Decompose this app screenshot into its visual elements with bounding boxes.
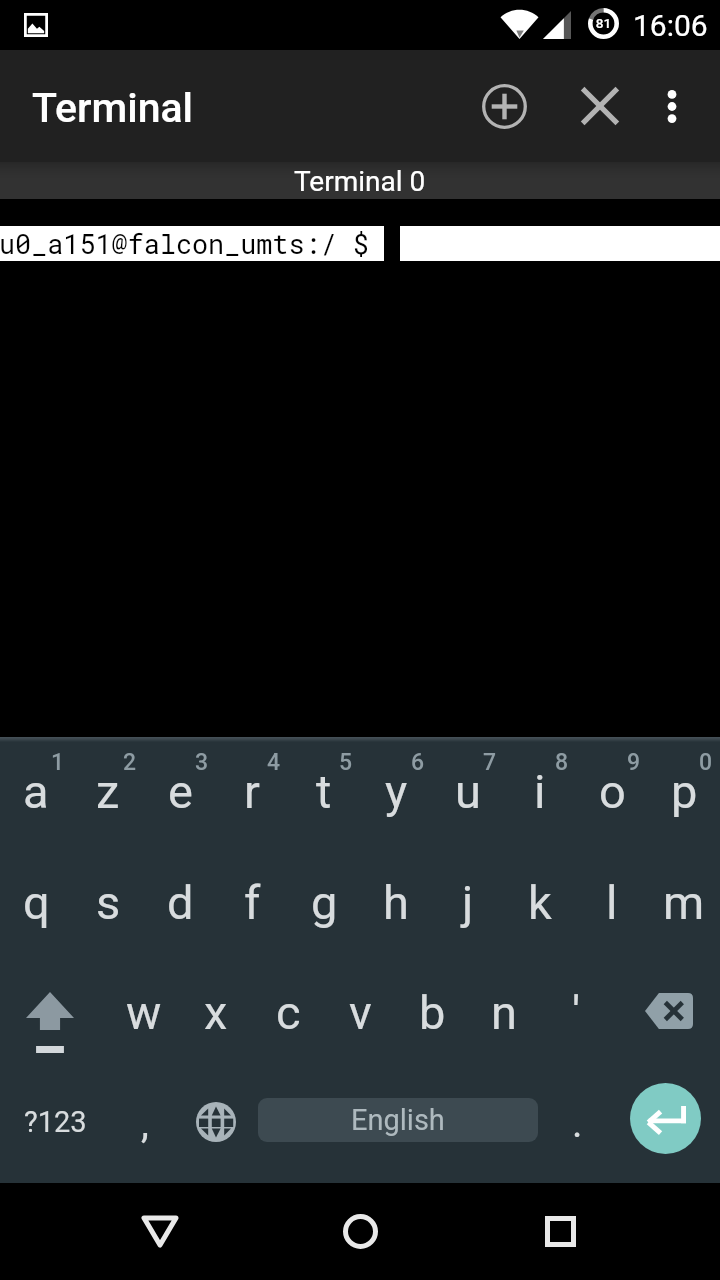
button[interactable]: , xyxy=(110,1067,178,1177)
staticText: e xyxy=(168,764,193,819)
staticText: 3 xyxy=(195,749,209,775)
button[interactable]: p xyxy=(648,737,720,847)
button[interactable]: o xyxy=(576,737,648,847)
button[interactable]: a xyxy=(0,737,72,847)
button[interactable]: ' xyxy=(540,957,612,1067)
button[interactable]: More options xyxy=(644,78,700,134)
staticText: 0 xyxy=(699,749,713,775)
button[interactable]: x xyxy=(180,957,252,1067)
button[interactable]: ?123 xyxy=(12,1067,98,1177)
staticText: g xyxy=(311,875,338,930)
button[interactable]: f xyxy=(216,847,288,957)
staticText: k xyxy=(528,875,552,930)
staticText: Terminal 0 xyxy=(294,165,426,198)
staticText: m xyxy=(663,875,705,930)
staticText: 8 xyxy=(555,749,569,775)
button[interactable]: g xyxy=(288,847,360,957)
staticText: Terminal xyxy=(32,84,194,132)
staticText: d xyxy=(167,875,194,930)
staticText: , xyxy=(141,1100,149,1147)
button[interactable]: Terminal 0 xyxy=(0,162,720,199)
staticText: v xyxy=(349,985,372,1040)
staticText: English xyxy=(351,1103,445,1137)
staticText: y xyxy=(385,764,408,819)
button[interactable]: i xyxy=(504,737,576,847)
staticText: 16:06 xyxy=(633,8,708,43)
button[interactable]: c xyxy=(252,957,324,1067)
staticText: l xyxy=(606,875,618,930)
button[interactable]: v xyxy=(324,957,396,1067)
staticText: i xyxy=(534,764,546,819)
button[interactable]: Change keyboard language xyxy=(185,1067,247,1177)
staticText: 5 xyxy=(339,749,353,775)
staticText: s xyxy=(96,875,121,930)
button[interactable]: t xyxy=(288,737,360,847)
button[interactable]: Close terminal xyxy=(572,78,628,134)
button[interactable]: h xyxy=(360,847,432,957)
button[interactable]: English xyxy=(258,1098,538,1142)
button[interactable]: s xyxy=(72,847,144,957)
staticText: n xyxy=(491,985,517,1040)
staticText: 7 xyxy=(483,749,497,775)
button[interactable]: Shift xyxy=(14,957,86,1067)
staticText: f xyxy=(244,875,261,930)
staticText: w xyxy=(126,985,162,1040)
staticText: 6 xyxy=(411,749,425,775)
staticText: r xyxy=(244,764,260,819)
button[interactable]: k xyxy=(504,847,576,957)
staticText: j xyxy=(462,875,474,930)
button[interactable]: Enter xyxy=(630,1083,701,1154)
button[interactable]: y xyxy=(360,737,432,847)
staticText: ' xyxy=(572,985,581,1040)
button[interactable]: b xyxy=(396,957,468,1067)
staticText: 4 xyxy=(267,749,281,775)
button[interactable]: n xyxy=(468,957,540,1067)
staticText: . xyxy=(572,1100,583,1147)
staticText: u xyxy=(455,764,481,819)
staticText: b xyxy=(419,985,446,1040)
button[interactable]: z xyxy=(72,737,144,847)
button[interactable]: New terminal xyxy=(476,78,532,134)
button[interactable]: j xyxy=(432,847,504,957)
staticText: 2 xyxy=(123,749,137,775)
button[interactable]: Back xyxy=(120,1199,200,1263)
button[interactable]: . xyxy=(545,1067,605,1177)
staticText: o xyxy=(599,764,626,819)
button[interactable]: m xyxy=(648,847,720,957)
staticText: h xyxy=(383,875,409,930)
button[interactable]: Home xyxy=(320,1199,400,1263)
staticText: a xyxy=(23,764,49,819)
button[interactable]: Backspace xyxy=(634,957,706,1067)
button[interactable]: w xyxy=(108,957,180,1067)
staticText: x xyxy=(204,985,228,1040)
button[interactable]: Recent apps xyxy=(520,1199,600,1263)
staticText: q xyxy=(23,875,50,930)
button[interactable]: e xyxy=(144,737,216,847)
staticText: z xyxy=(96,764,120,819)
button[interactable]: u xyxy=(432,737,504,847)
staticText: t xyxy=(316,764,332,819)
staticText: ?123 xyxy=(24,1105,87,1139)
button[interactable]: l xyxy=(576,847,648,957)
button[interactable]: r xyxy=(216,737,288,847)
staticText: p xyxy=(671,764,698,819)
staticText: 9 xyxy=(627,749,641,775)
staticText: c xyxy=(276,985,301,1040)
staticText: u0_a151@falcon_umts:/ $ xyxy=(0,226,369,261)
staticText: 81 xyxy=(588,15,619,31)
button[interactable]: q xyxy=(0,847,72,957)
staticText: 1 xyxy=(51,749,65,775)
button[interactable]: d xyxy=(144,847,216,957)
